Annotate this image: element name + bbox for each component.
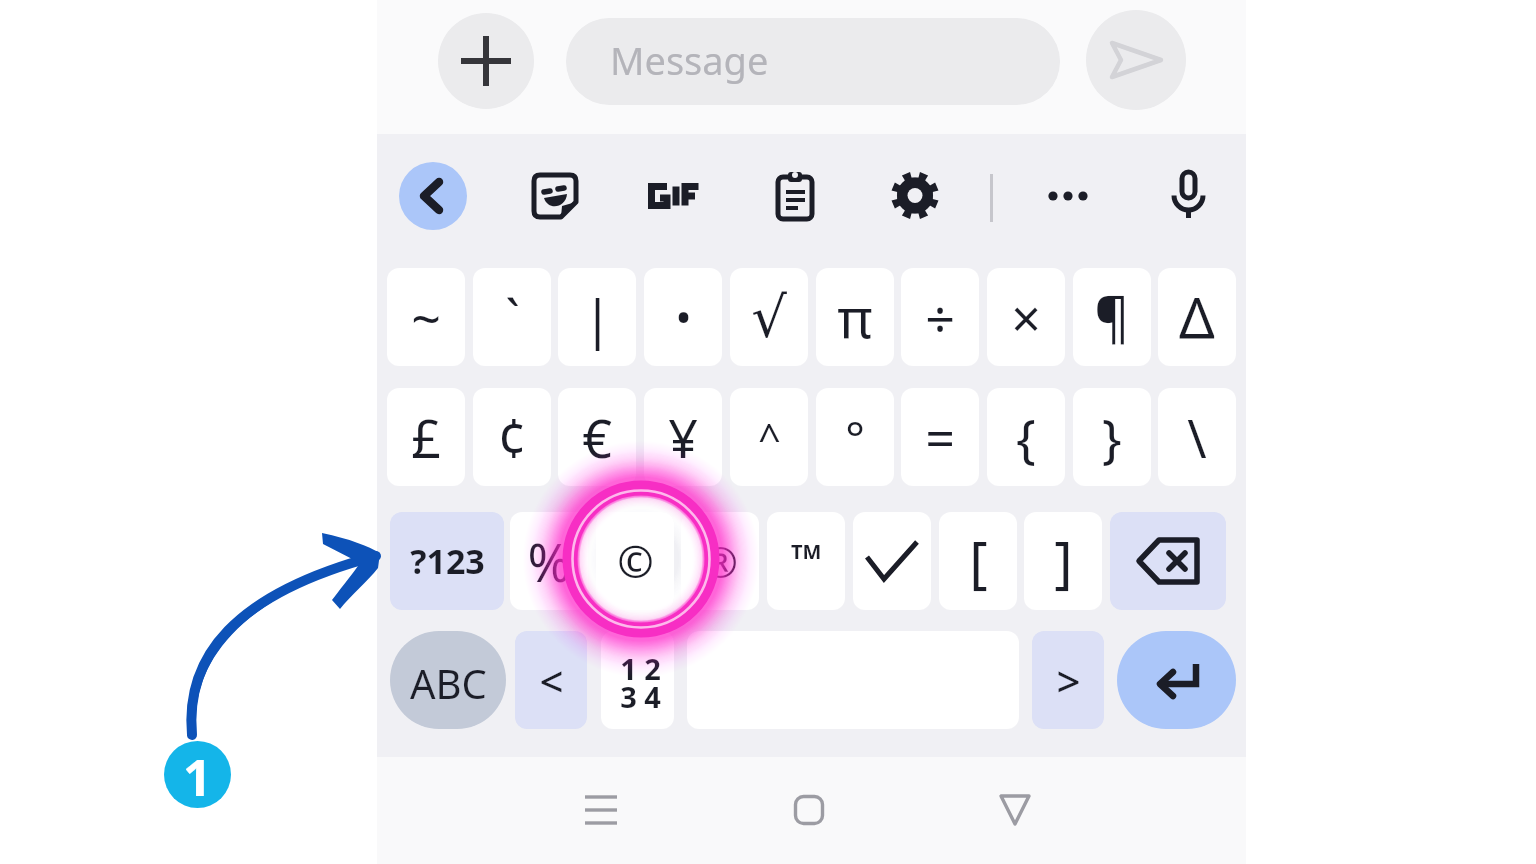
button[interactable]: Recent apps: [563, 772, 639, 848]
staticText: TM: [791, 538, 822, 565]
staticText: ©: [617, 531, 654, 591]
button[interactable]: ©: [596, 512, 674, 610]
button[interactable]: ¢: [473, 388, 551, 486]
button[interactable]: Backspace: [1110, 512, 1226, 610]
staticText: 1 2 3 4: [620, 649, 661, 716]
button[interactable]: Stickers: [515, 156, 595, 236]
staticText: ¢: [497, 402, 527, 473]
button[interactable]: ×: [987, 268, 1065, 366]
button[interactable]: [: [939, 512, 1017, 610]
button[interactable]: Message: [566, 18, 1060, 105]
button[interactable]: \: [1158, 388, 1236, 486]
button[interactable]: £: [387, 388, 465, 486]
button[interactable]: √: [730, 268, 808, 366]
staticText: <: [539, 652, 564, 709]
button[interactable]: %: [510, 512, 588, 610]
button[interactable]: ]: [1024, 512, 1102, 610]
button[interactable]: =: [901, 388, 979, 486]
staticText: Message: [610, 34, 769, 86]
staticText: ABC: [410, 656, 487, 710]
staticText: £: [411, 402, 441, 473]
button[interactable]: Clipboard: [755, 156, 835, 236]
button[interactable]: ABC: [390, 631, 506, 729]
staticText: √: [751, 285, 787, 350]
staticText: ®: [703, 533, 738, 590]
staticText: ?123: [410, 538, 485, 584]
staticText: |: [583, 282, 612, 353]
button[interactable]: }: [1073, 388, 1151, 486]
button[interactable]: Add attachment: [438, 13, 534, 109]
button[interactable]: Back: [977, 772, 1053, 848]
staticText: ]: [1054, 523, 1073, 599]
button[interactable]: More options: [1028, 156, 1108, 236]
staticText: π: [837, 280, 873, 354]
staticText: `: [505, 282, 520, 353]
button[interactable]: Space: [687, 631, 1019, 729]
button[interactable]: `: [473, 268, 551, 366]
button[interactable]: ~: [387, 268, 465, 366]
staticText: •: [675, 287, 692, 347]
button[interactable]: {: [987, 388, 1065, 486]
button[interactable]: ÷: [901, 268, 979, 366]
button[interactable]: Δ: [1158, 268, 1236, 366]
button[interactable]: ¥: [644, 388, 722, 486]
staticText: ~: [411, 282, 441, 353]
button[interactable]: π: [816, 268, 894, 366]
button[interactable]: Home: [771, 772, 847, 848]
staticText: Δ: [1179, 279, 1215, 355]
button[interactable]: Back: [399, 162, 467, 230]
button[interactable]: Voice input: [1148, 156, 1228, 236]
staticText: {: [1016, 402, 1036, 473]
button[interactable]: Enter: [1117, 631, 1236, 729]
staticText: \: [1187, 402, 1207, 473]
button[interactable]: GIF: [635, 156, 715, 236]
button[interactable]: ?123: [390, 512, 504, 610]
button[interactable]: •: [644, 268, 722, 366]
staticText: }: [1102, 402, 1122, 473]
staticText: °: [845, 406, 865, 469]
staticText: =: [925, 402, 955, 473]
button[interactable]: °: [816, 388, 894, 486]
staticText: %: [527, 526, 571, 597]
button[interactable]: >: [1032, 631, 1104, 729]
button[interactable]: TM: [767, 512, 845, 610]
button[interactable]: Settings: [875, 156, 955, 236]
staticText: ¥: [668, 402, 698, 473]
button[interactable]: <: [515, 631, 587, 729]
button[interactable]: |: [558, 268, 636, 366]
button[interactable]: ®: [681, 512, 759, 610]
other: Step 1: [164, 741, 231, 808]
button[interactable]: Check mark: [853, 512, 931, 610]
staticText: >: [1056, 652, 1081, 709]
staticText: €: [582, 402, 612, 473]
staticText: ÷: [925, 282, 955, 353]
button[interactable]: 1 2 3 4: [601, 631, 674, 729]
staticText: ¶: [1094, 280, 1130, 354]
button[interactable]: ¶: [1073, 268, 1151, 366]
button[interactable]: Send: [1086, 10, 1186, 110]
button[interactable]: €: [558, 388, 636, 486]
staticText: 1: [183, 743, 212, 808]
staticText: ^: [758, 410, 781, 464]
staticText: [: [969, 523, 988, 599]
button[interactable]: ^: [730, 388, 808, 486]
staticText: ×: [1011, 282, 1041, 353]
